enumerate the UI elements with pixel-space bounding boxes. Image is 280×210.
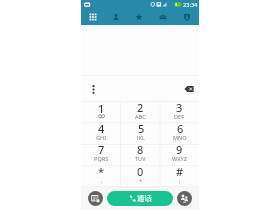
- button[interactable]: *: [81, 165, 121, 187]
- staticText: 0: [137, 164, 144, 179]
- button[interactable]: 0: [121, 165, 160, 187]
- staticText: 5: [138, 121, 145, 136]
- staticText: 7: [98, 142, 105, 157]
- staticText: ,: [101, 177, 103, 184]
- button[interactable]: Add contact: [177, 191, 192, 206]
- staticText: ABC: [135, 113, 146, 119]
- staticText: TUV: [135, 155, 146, 162]
- staticText: #: [176, 164, 184, 179]
- staticText: +: [139, 177, 143, 184]
- staticText: DEF: [174, 113, 185, 119]
- staticText: *: [98, 164, 105, 179]
- button[interactable]: Favorites: [127, 9, 151, 25]
- staticText: WXYZ: [172, 155, 187, 162]
- button[interactable]: Message: [88, 191, 103, 206]
- button[interactable]: 8: [121, 143, 160, 165]
- button[interactable]: Groups: [151, 9, 175, 25]
- button[interactable]: 6: [160, 122, 199, 143]
- staticText: 23:34: [183, 1, 198, 9]
- staticText: 通话: [137, 194, 152, 203]
- button[interactable]: 7: [81, 143, 121, 165]
- staticText: 8: [137, 142, 144, 157]
- button[interactable]: 9: [160, 143, 199, 165]
- staticText: 6: [177, 121, 184, 136]
- button[interactable]: #: [160, 165, 199, 187]
- staticText: 1: [98, 101, 105, 116]
- button[interactable]: Privacy: [175, 9, 199, 25]
- button[interactable]: 2: [121, 101, 160, 122]
- staticText: 3: [176, 100, 183, 115]
- staticText: JKL: [137, 134, 145, 140]
- staticText: GHI: [96, 134, 107, 140]
- button[interactable]: 4: [81, 122, 121, 143]
- button[interactable]: Dialpad: [81, 9, 104, 25]
- button[interactable]: 5: [121, 122, 160, 143]
- button[interactable]: Contacts: [104, 9, 127, 25]
- staticText: 9: [176, 142, 183, 157]
- staticText: PQRS: [94, 155, 109, 162]
- staticText: ;: [179, 177, 181, 184]
- staticText: MNO: [173, 134, 187, 140]
- button[interactable]: Backspace: [180, 80, 198, 98]
- button[interactable]: 通话: [107, 191, 173, 206]
- button[interactable]: More options: [84, 80, 102, 98]
- staticText: 2: [137, 100, 144, 115]
- button[interactable]: 3: [160, 101, 199, 122]
- button[interactable]: 1: [81, 101, 121, 122]
- staticText: 4: [98, 121, 105, 136]
